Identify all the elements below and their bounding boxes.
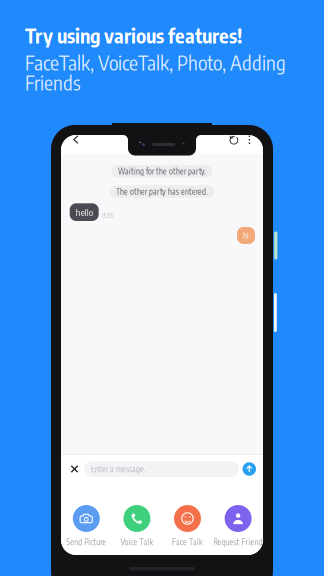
staticText: Waiting for the other party. <box>118 166 206 176</box>
button[interactable]: Send <box>239 462 258 476</box>
button[interactable]: Refresh <box>222 135 240 154</box>
staticText: Try using various features! <box>25 23 242 48</box>
button[interactable]: Face Talk <box>162 505 213 547</box>
staticText: hello <box>76 206 93 218</box>
button[interactable]: Back <box>61 135 86 154</box>
button[interactable]: Voice Talk <box>112 505 162 547</box>
staticText: Send Picture <box>66 537 106 547</box>
staticText: The other party has entered. <box>116 187 208 197</box>
staticText: Request Friend <box>214 537 263 547</box>
staticText: Voice Talk <box>120 537 153 547</box>
staticText: Face Talk <box>172 537 203 547</box>
staticText: FaceTalk, VoiceTalk, Photo, Adding Frien… <box>25 50 286 95</box>
button[interactable]: More options <box>240 135 263 154</box>
staticText: 15:50 <box>102 212 114 219</box>
button[interactable]: Request Friend <box>213 505 263 547</box>
staticText: hi <box>243 230 249 240</box>
button[interactable]: Send Picture <box>61 505 112 547</box>
button[interactable]: Close <box>66 457 84 481</box>
staticText: Enter a message. <box>91 464 146 474</box>
